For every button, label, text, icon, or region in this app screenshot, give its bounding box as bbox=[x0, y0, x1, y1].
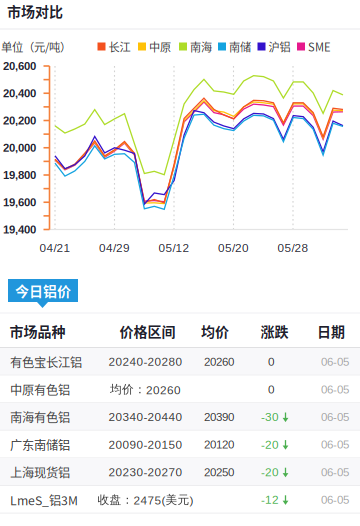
staticText: 市场对比 bbox=[7, 1, 63, 21]
staticText: 价格区间 bbox=[119, 321, 175, 341]
staticText: 05/28 bbox=[277, 241, 308, 254]
staticText: 市场品种 bbox=[9, 321, 65, 341]
button[interactable]: 中原有色铝 bbox=[0, 376, 360, 403]
staticText: 06-05 bbox=[321, 355, 349, 368]
staticText: SME bbox=[308, 38, 331, 55]
staticText: 20,200 bbox=[3, 114, 36, 127]
staticText: 19,800 bbox=[3, 169, 36, 181]
staticText: 06-05 bbox=[321, 466, 349, 479]
staticText: 20260 bbox=[204, 355, 234, 368]
staticText: 05/12 bbox=[158, 241, 189, 254]
staticText: 中原 bbox=[149, 38, 171, 55]
staticText: 20230-20270 bbox=[108, 466, 182, 479]
button[interactable]: 广东南储铝 bbox=[0, 431, 360, 458]
staticText: LmeS_铝3M bbox=[10, 491, 78, 509]
staticText: 沪铝 bbox=[268, 38, 290, 55]
staticText: 南海有色铝 bbox=[10, 408, 70, 426]
staticText: 20,000 bbox=[3, 141, 36, 154]
staticText: 20,600 bbox=[3, 60, 36, 72]
staticText: 04/21 bbox=[39, 241, 70, 254]
button[interactable]: 有色宝长江铝 bbox=[0, 348, 360, 376]
staticText: 06-05 bbox=[321, 438, 349, 451]
button[interactable]: 上海现货铝 bbox=[0, 458, 360, 486]
staticText: 06-05 bbox=[321, 493, 349, 506]
staticText: 收盘：2475(美元) bbox=[97, 492, 193, 507]
staticText: 20240-20280 bbox=[108, 355, 182, 368]
staticText: -30 bbox=[261, 410, 279, 423]
staticText: -12 bbox=[261, 493, 279, 506]
staticText: 日期 bbox=[317, 321, 345, 341]
staticText: 单位（元/吨） bbox=[1, 38, 71, 55]
button[interactable]: 今日铝价 bbox=[8, 279, 78, 309]
staticText: 均价：20260 bbox=[110, 382, 181, 397]
staticText: 20390 bbox=[204, 411, 234, 423]
staticText: 06-05 bbox=[321, 411, 349, 423]
staticText: 06-05 bbox=[321, 383, 349, 396]
staticText: 南储 bbox=[229, 38, 251, 55]
staticText: 19,600 bbox=[3, 196, 36, 209]
staticText: 20090-20150 bbox=[108, 438, 182, 451]
staticText: 中原有色铝 bbox=[10, 380, 70, 398]
staticText: 05/20 bbox=[218, 241, 249, 254]
staticText: 0 bbox=[268, 355, 275, 368]
staticText: 20250 bbox=[204, 466, 234, 479]
staticText: 广东南储铝 bbox=[10, 436, 70, 453]
staticText: 19,400 bbox=[3, 223, 36, 236]
staticText: 20340-20440 bbox=[108, 410, 182, 423]
staticText: 涨跌 bbox=[260, 321, 288, 341]
staticText: 今日铝价 bbox=[15, 280, 71, 301]
staticText: 20120 bbox=[204, 438, 234, 451]
staticText: -20 bbox=[261, 466, 279, 479]
staticText: 上海现货铝 bbox=[10, 463, 70, 481]
staticText: -20 bbox=[261, 438, 279, 451]
staticText: 有色宝长江铝 bbox=[10, 353, 82, 371]
staticText: 均价 bbox=[201, 321, 229, 341]
button[interactable]: LmeS_铝3M bbox=[0, 486, 360, 514]
staticText: 长江 bbox=[108, 38, 130, 55]
staticText: 0 bbox=[268, 383, 275, 396]
staticText: 04/29 bbox=[99, 241, 130, 254]
staticText: 南海 bbox=[190, 38, 212, 55]
staticText: 20,400 bbox=[3, 87, 36, 100]
button[interactable]: 南海有色铝 bbox=[0, 403, 360, 431]
